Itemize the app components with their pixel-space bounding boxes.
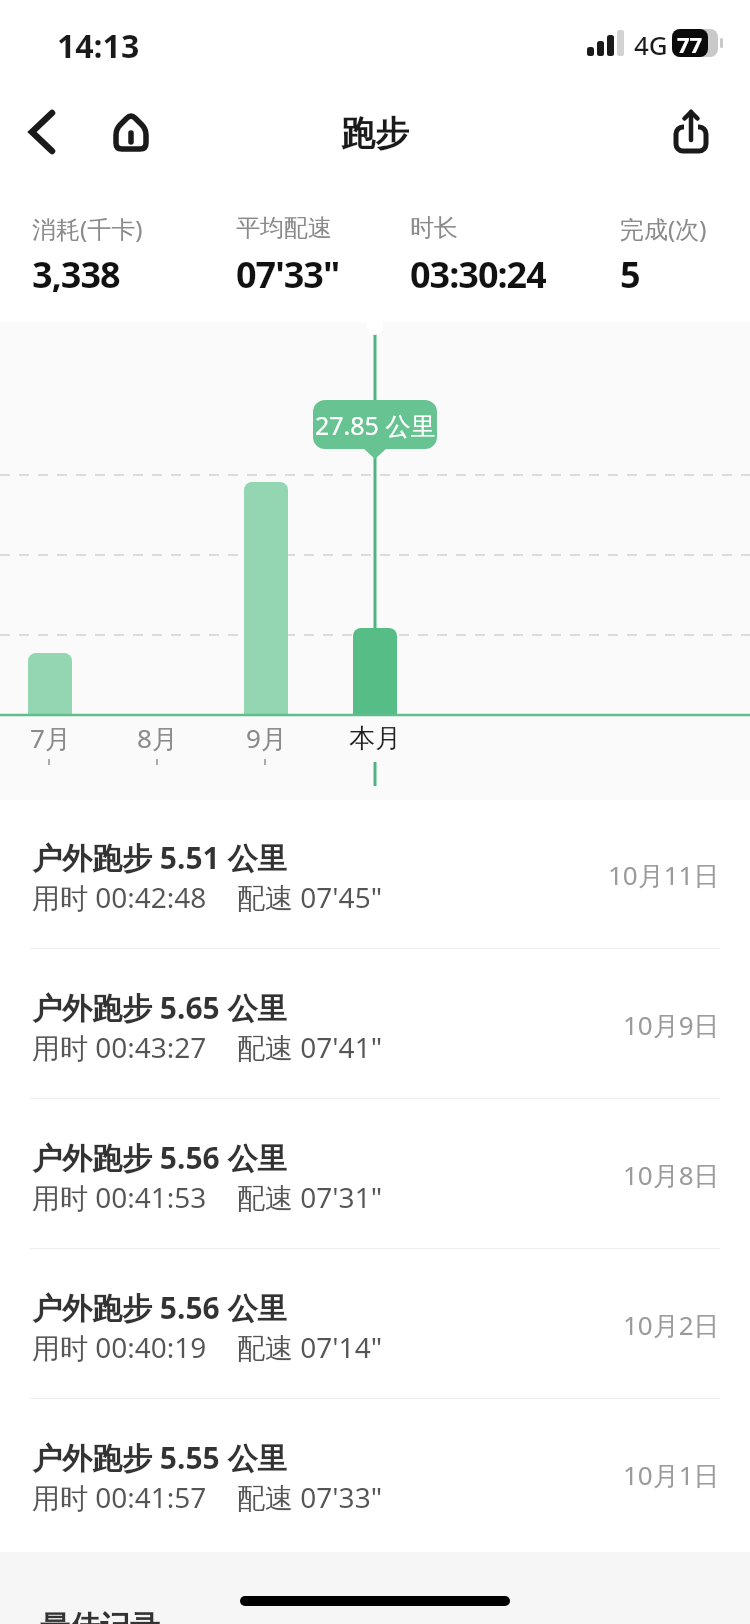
staticText: 14:13 [57,24,140,64]
staticText: 用时 00:41:53 [32,1178,207,1216]
staticText: 10月1日 [623,1457,720,1493]
staticText: 10月8日 [623,1157,720,1193]
staticText: 户外跑步 5.55 公里 [32,1437,288,1477]
staticText: 配速 07'41" [237,1028,383,1066]
button[interactable] [18,105,70,161]
button[interactable]: 户外跑步 5.65 公里 [0,950,750,1100]
staticText: 本月 [349,722,401,755]
staticText: 跑步 [341,112,409,155]
staticText: 5 [620,250,640,292]
staticText: 用时 00:40:19 [32,1328,207,1366]
staticText: 3,338 [32,250,120,292]
button[interactable] [665,100,721,162]
staticText: 10月11日 [608,857,720,893]
staticText: 户外跑步 5.65 公里 [32,987,288,1027]
staticText: 完成(次) [620,212,707,244]
button[interactable]: 户外跑步 5.56 公里 [0,1250,750,1400]
staticText: 27.85 公里 [315,408,436,442]
staticText: 配速 07'33" [237,1478,383,1516]
staticText: 10月9日 [623,1007,720,1043]
staticText: 消耗(千卡) [32,212,143,244]
staticText: 时长 [410,213,458,243]
staticText: 配速 07'45" [237,878,383,916]
staticText: 10月2日 [623,1307,720,1343]
staticText: 4G [634,27,668,62]
staticText: 平均配速 [236,213,332,243]
button[interactable]: 户外跑步 5.55 公里 [0,1400,750,1550]
staticText: 用时 00:41:57 [32,1478,207,1516]
staticText: 77 [677,29,703,57]
staticText: 配速 07'14" [237,1328,383,1366]
button[interactable] [105,105,161,161]
staticText: 配速 07'31" [237,1178,383,1216]
staticText: 7月 [30,720,71,756]
staticText: 07'33" [236,250,340,292]
staticText: 03:30:24 [410,250,546,292]
staticText: 用时 00:43:27 [32,1028,207,1066]
staticText: 8月 [137,720,178,756]
staticText: 9月 [246,720,287,756]
staticText: 户外跑步 5.56 公里 [32,1137,288,1177]
staticText: 户外跑步 5.56 公里 [32,1287,288,1327]
button[interactable]: 户外跑步 5.51 公里 [0,800,750,950]
staticText: 最佳记录 [40,1608,160,1624]
staticText: 用时 00:42:48 [32,878,207,916]
staticText: 户外跑步 5.51 公里 [32,837,288,877]
button[interactable]: 户外跑步 5.56 公里 [0,1100,750,1250]
